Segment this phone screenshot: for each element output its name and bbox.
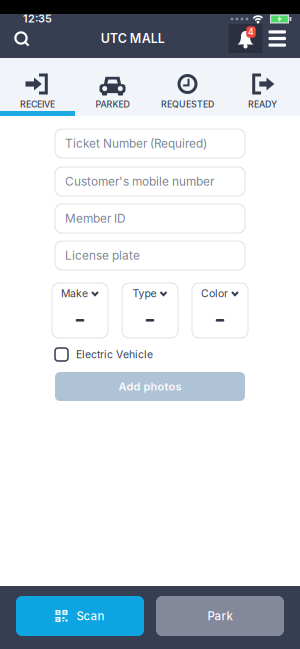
staticText: License plate: [65, 248, 140, 263]
staticText: Member ID: [65, 211, 126, 226]
staticText: Scan: [76, 609, 104, 623]
button[interactable]: PARKED: [75, 58, 150, 116]
staticText: Customer's mobile number: [65, 174, 214, 189]
staticText: Color: [201, 287, 228, 300]
staticText: READY: [248, 99, 277, 110]
staticText: Electric Vehicle: [76, 348, 153, 361]
button[interactable]: Menu: [262, 35, 300, 51]
staticText: PARKED: [95, 99, 129, 110]
staticText: Ticket Number (Required): [65, 136, 207, 151]
button[interactable]: Notifications: [228, 28, 262, 58]
staticText: REQUESTED: [161, 99, 214, 110]
button[interactable]: REQUESTED: [150, 58, 225, 116]
staticText: Park: [207, 609, 232, 623]
button[interactable]: Make: [52, 283, 108, 338]
button[interactable]: READY: [225, 58, 300, 116]
button[interactable]: RECEIVE: [0, 58, 75, 116]
staticText: Add photos: [118, 380, 181, 393]
button[interactable]: Type: [122, 283, 178, 338]
staticText: Make: [61, 287, 88, 300]
staticText: UTC MALL: [101, 31, 165, 46]
button[interactable]: Scan: [16, 596, 144, 636]
button[interactable]: Add photos: [55, 372, 245, 401]
button[interactable]: Color: [192, 283, 248, 338]
staticText: 12:35: [23, 12, 52, 25]
button[interactable]: Electric Vehicle: [55, 348, 245, 361]
button[interactable]: Park: [156, 596, 284, 636]
staticText: 4: [248, 27, 254, 37]
button[interactable]: Search: [0, 28, 37, 58]
staticText: Type: [132, 287, 156, 300]
staticText: RECEIVE: [20, 99, 55, 110]
